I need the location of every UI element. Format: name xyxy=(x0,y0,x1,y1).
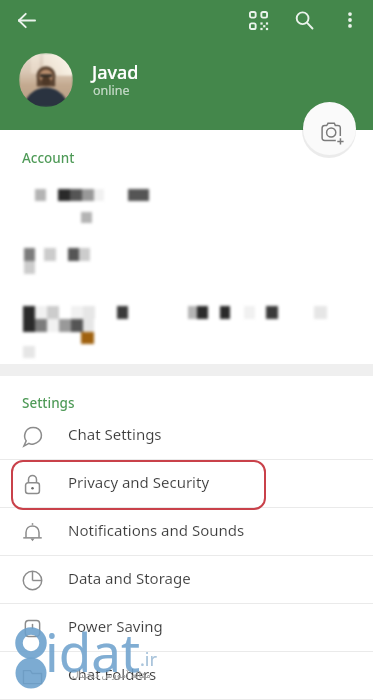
staticText: .ir xyxy=(140,647,157,672)
button[interactable]: Chat Settings xyxy=(0,412,373,460)
staticText: Chat Folders xyxy=(68,664,157,684)
button[interactable]: Profile photo xyxy=(19,53,73,107)
staticText: Javad xyxy=(92,60,139,85)
staticText: Data and Storage xyxy=(68,568,191,588)
button[interactable]: Data and Storage xyxy=(0,556,373,604)
button[interactable]: Change profile photo xyxy=(303,102,356,155)
staticText: Power Saving xyxy=(68,616,163,636)
staticText: Privacy and Security xyxy=(68,472,210,492)
staticText: online xyxy=(93,82,130,99)
staticText: Chat Settings xyxy=(68,424,162,444)
button[interactable]: Power Saving xyxy=(0,604,373,652)
staticText: مقاله آموزش دیجیتال xyxy=(72,668,151,680)
staticText: Settings xyxy=(22,394,75,412)
button[interactable]: QR code xyxy=(242,4,274,36)
staticText: Account xyxy=(22,149,75,167)
button[interactable]: Notifications and Sounds xyxy=(0,508,373,556)
button[interactable]: Back xyxy=(10,4,42,36)
staticText: Notifications and Sounds xyxy=(68,520,245,540)
button[interactable]: More options xyxy=(334,4,366,36)
button[interactable]: Chat Folders xyxy=(0,652,373,700)
staticText: idat xyxy=(45,615,141,687)
button[interactable]: Privacy and Security xyxy=(0,460,373,508)
button[interactable]: Search xyxy=(288,4,320,36)
